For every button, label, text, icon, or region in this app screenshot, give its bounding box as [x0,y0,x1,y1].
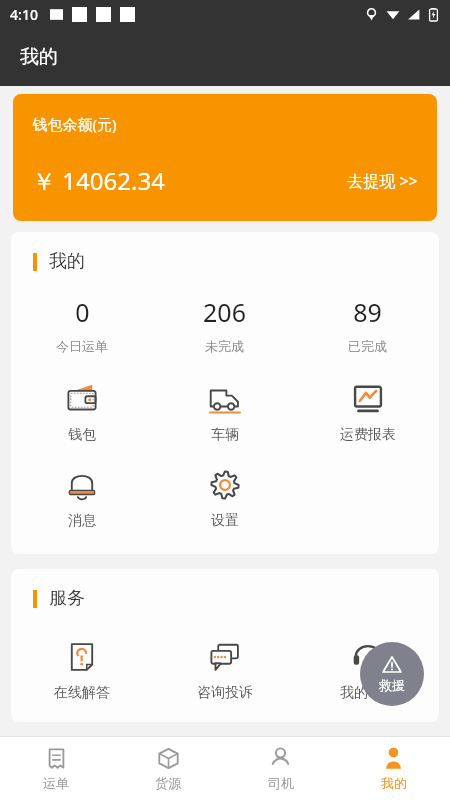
button[interactable]: 我的客服 [296,640,439,702]
button[interactable]: 钱包余额(元) [13,94,437,221]
staticText: 货源 [155,775,181,791]
staticText: 司机 [268,775,294,791]
staticText: 89 [353,295,382,329]
button[interactable]: 货源 [112,737,224,800]
staticText: 咨询投诉 [197,684,253,702]
button[interactable]: 89 [296,295,439,354]
staticText: 206 [203,295,246,329]
button[interactable]: 车辆 [153,382,296,444]
staticText: 车辆 [211,426,239,444]
staticText: 我的客服 [340,684,396,702]
staticText: 设置 [211,512,239,530]
staticText: 我的 [49,250,85,273]
staticText: ￥ 14062.34 [32,164,165,197]
button[interactable]: 0 [11,295,153,354]
button[interactable]: 在线解答 [11,640,153,702]
staticText: 0 [75,295,90,329]
staticText: 未完成 [205,338,244,354]
staticText: 我的 [20,45,58,69]
staticText: 消息 [68,512,96,530]
staticText: 4:10 [10,5,38,24]
staticText: 救援 [379,677,405,693]
button[interactable]: 运单 [0,737,112,800]
staticText: 运费报表 [340,426,396,444]
button[interactable]: 设置 [153,468,296,530]
staticText: 钱包 [68,426,96,444]
button[interactable]: 钱包 [11,382,153,444]
staticText: 服务 [49,587,85,610]
button[interactable]: 消息 [11,468,153,530]
staticText: 钱包余额(元) [32,114,117,134]
staticText: 我的 [381,775,407,791]
button[interactable]: 运费报表 [296,382,439,444]
button[interactable]: 司机 [224,737,337,800]
staticText: 在线解答 [54,684,110,702]
staticText: 今日运单 [56,338,108,354]
button[interactable]: 我的 [337,737,450,800]
staticText: 去提现 >> [347,170,418,192]
button[interactable]: 救援 [360,642,424,706]
button[interactable]: 咨询投诉 [153,640,296,702]
button[interactable]: 206 [153,295,296,354]
staticText: 已完成 [348,338,387,354]
staticText: 运单 [43,775,69,791]
